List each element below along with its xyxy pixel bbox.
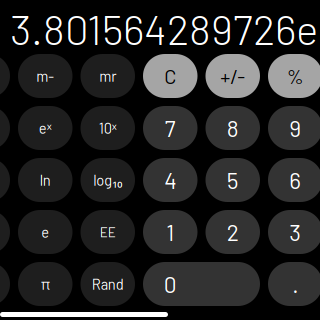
staticText: C: [164, 64, 176, 88]
button[interactable]: [0, 210, 10, 254]
button[interactable]: EE: [80, 210, 135, 254]
staticText: .: [292, 270, 298, 298]
staticText: 10ˣ: [99, 118, 117, 138]
staticText: %: [287, 64, 304, 88]
staticText: 1: [166, 218, 174, 246]
staticText: eˣ: [39, 118, 52, 138]
button[interactable]: [0, 262, 10, 306]
button[interactable]: 5: [205, 158, 260, 202]
staticText: 2: [227, 218, 239, 246]
button[interactable]: [0, 158, 10, 202]
staticText: 3.801564289726e: [10, 3, 318, 53]
button[interactable]: +/-: [205, 54, 260, 98]
button[interactable]: 7: [143, 106, 197, 150]
staticText: 7: [165, 114, 176, 142]
staticText: e: [41, 223, 49, 241]
staticText: Rand: [92, 275, 124, 293]
button[interactable]: e: [18, 210, 72, 254]
button[interactable]: 2: [205, 210, 260, 254]
button[interactable]: 8: [205, 106, 260, 150]
button[interactable]: 1: [143, 210, 197, 254]
button[interactable]: ln: [18, 158, 72, 202]
staticText: 4: [164, 166, 176, 194]
staticText: 5: [227, 166, 239, 194]
button[interactable]: [0, 106, 10, 150]
staticText: ln: [40, 171, 51, 189]
button[interactable]: eˣ: [18, 106, 72, 150]
button[interactable]: 10ˣ: [80, 106, 135, 150]
staticText: m-: [36, 67, 54, 85]
staticText: log₁₀: [93, 170, 122, 190]
button[interactable]: 0: [143, 262, 260, 306]
staticText: 8: [227, 114, 239, 142]
button[interactable]: log₁₀: [80, 158, 135, 202]
button[interactable]: 9: [268, 106, 320, 150]
button[interactable]: %: [268, 54, 320, 98]
button[interactable]: 6: [268, 158, 320, 202]
button[interactable]: π: [18, 262, 72, 306]
staticText: 0: [164, 270, 177, 298]
staticText: +/-: [220, 64, 245, 88]
button[interactable]: [0, 54, 10, 98]
button[interactable]: .: [268, 262, 320, 306]
staticText: 3: [289, 218, 301, 246]
staticText: EE: [100, 224, 116, 240]
staticText: π: [41, 275, 50, 293]
button[interactable]: mr: [80, 54, 135, 98]
button[interactable]: 4: [143, 158, 197, 202]
staticText: 6: [289, 166, 301, 194]
button[interactable]: Rand: [80, 262, 135, 306]
staticText: mr: [99, 67, 116, 85]
button[interactable]: 3: [268, 210, 320, 254]
button[interactable]: m-: [18, 54, 72, 98]
staticText: 9: [289, 114, 301, 142]
button[interactable]: C: [143, 54, 197, 98]
